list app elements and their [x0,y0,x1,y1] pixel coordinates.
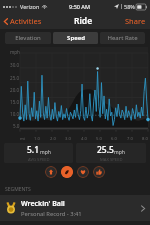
staticText: 6.0 [111,136,117,142]
staticText: Activities [10,16,42,26]
staticText: 4.0 [81,136,87,142]
staticText: Heart Rate [107,34,138,42]
staticText: 15.0 [10,99,20,105]
staticText: MAX SPEED [100,157,123,163]
staticText: 10.0 [10,111,20,117]
staticText: 1.0 [34,136,40,142]
staticText: Speed [67,34,85,42]
staticText: Ride [74,15,93,27]
button[interactable]: Elevation [5,32,51,44]
staticText: mi [20,136,25,142]
staticText: mph [114,149,125,156]
button[interactable]: Like [93,166,105,178]
button[interactable]: 25.5 [76,143,146,163]
staticText: Personal Record - 3:41 [21,210,82,218]
staticText: 2.0 [50,136,56,142]
staticText: 25.5 [97,144,114,156]
button[interactable]: Speed [53,32,98,44]
staticText: 5.0 [96,136,102,142]
button[interactable]: Activities [3,14,43,28]
staticText: 5.1 [27,144,40,156]
staticText: 25.0 [10,75,20,81]
staticText: Wreckin' Ball [21,199,65,209]
staticText: 58% [124,3,135,10]
button[interactable]: Love [77,166,89,178]
button[interactable]: Achievement [45,166,57,178]
button[interactable]: 5.1 [4,143,73,163]
button[interactable]: Share [124,14,147,28]
staticText: mph [40,149,51,156]
staticText: 7.0 [127,136,133,142]
staticText: Elevation [15,34,41,42]
button[interactable]: Hot [61,166,73,178]
staticText: SEGMENTS [5,186,31,193]
staticText: 20.0 [10,87,20,93]
staticText: 5.0 [13,123,20,129]
staticText: AVG SPEED [28,157,50,163]
staticText: 30.0 [10,62,20,68]
button[interactable]: Wreckin' Ball [0,195,150,221]
staticText: mph [10,49,20,55]
staticText: 9:50 AM [69,3,91,10]
staticText: 3.0 [65,136,71,142]
staticText: 8.0 [142,136,148,142]
button[interactable]: Heart Rate [100,32,145,44]
staticText: Verizon [20,3,40,10]
